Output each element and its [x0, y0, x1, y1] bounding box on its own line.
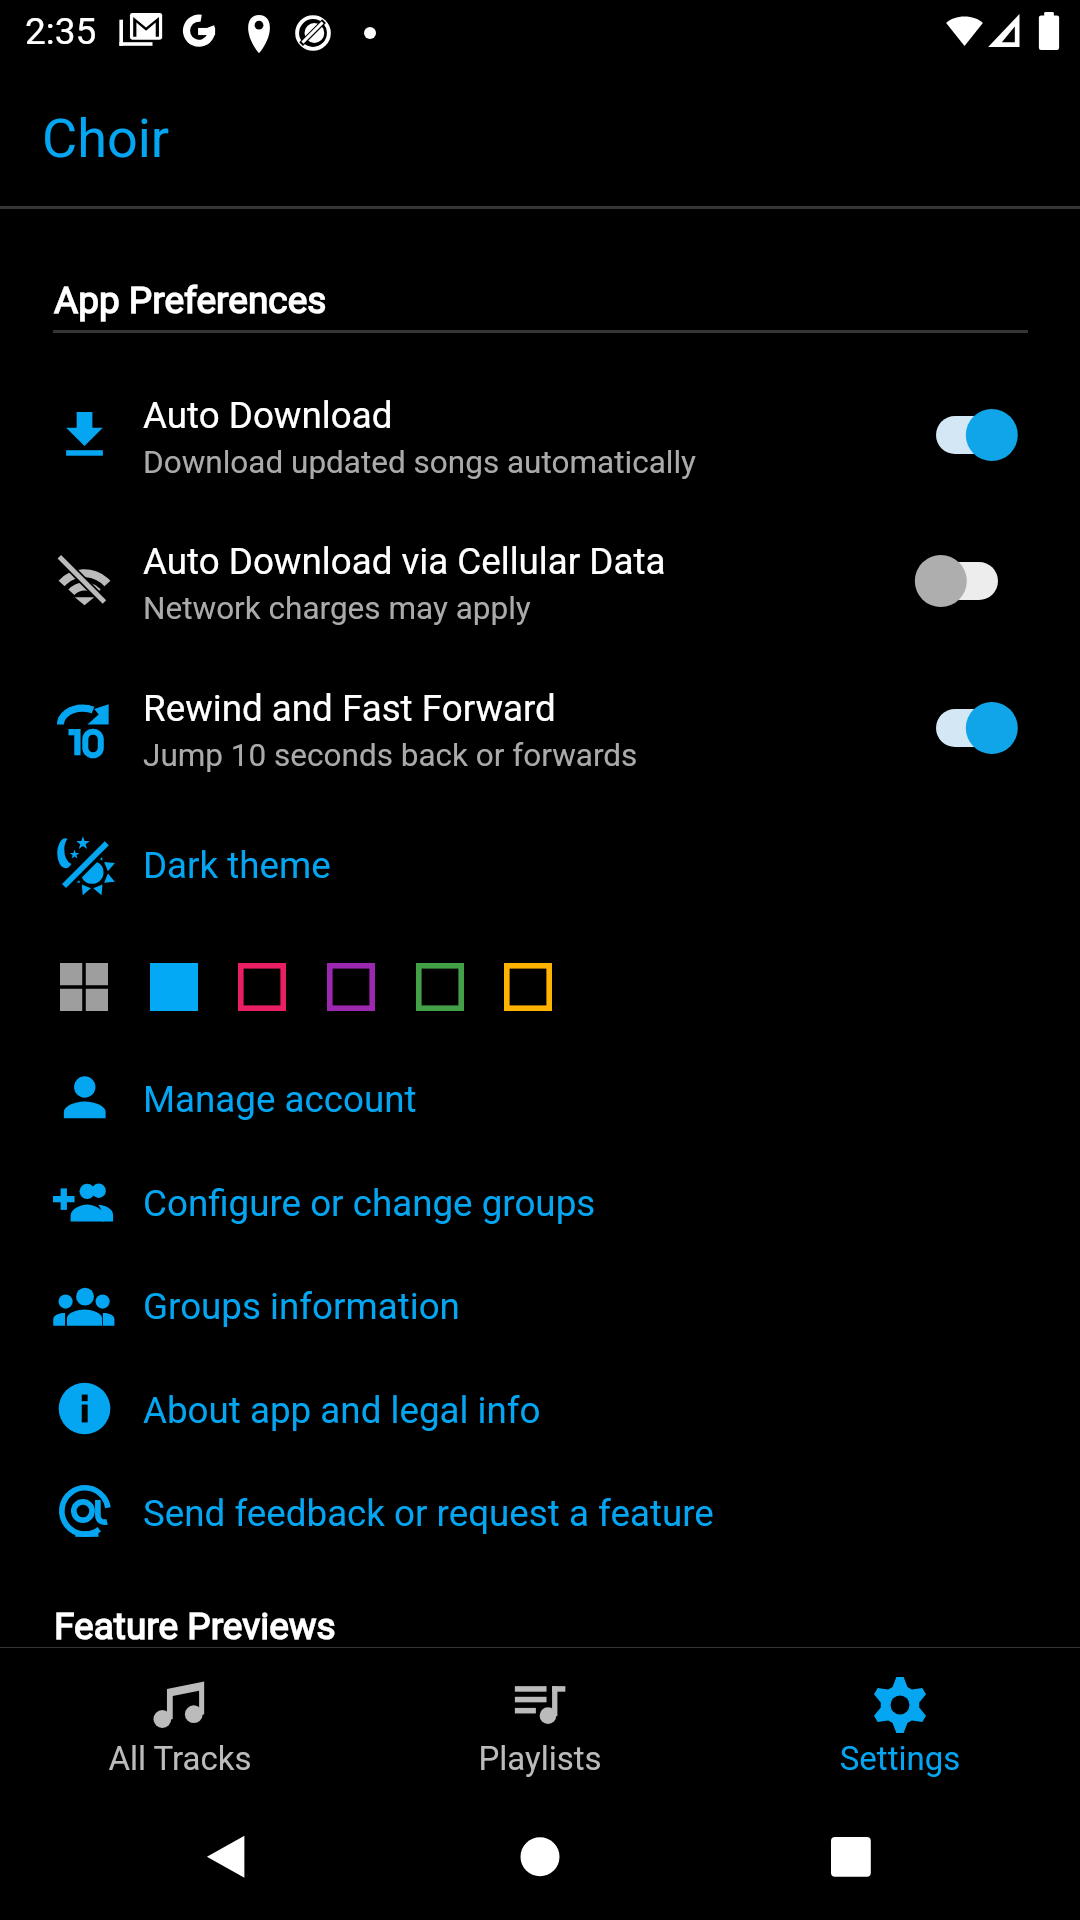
- button[interactable]: Theme colour: [238, 963, 286, 1011]
- staticText: Settings: [720, 1739, 1080, 1778]
- staticText: 2:35: [25, 10, 97, 53]
- button[interactable]: Theme colour: [327, 963, 375, 1011]
- button[interactable]: Rewind and Fast Forward: [900, 689, 1030, 767]
- button[interactable]: Auto Download via Cellular Data: [0, 511, 1080, 637]
- button[interactable]: Theme colour: [504, 963, 552, 1011]
- staticText: Manage account: [143, 1078, 417, 1121]
- staticText: Configure or change groups: [143, 1182, 596, 1225]
- button[interactable]: Back: [186, 1817, 266, 1897]
- button[interactable]: Groups information: [0, 1261, 1080, 1351]
- staticText: Groups information: [143, 1285, 460, 1328]
- staticText: Jump 10 seconds back or forwards: [143, 737, 638, 774]
- button[interactable]: All Tracks: [0, 1648, 360, 1800]
- button[interactable]: Configure or change groups: [0, 1158, 1080, 1248]
- button[interactable]: Manage account: [0, 1054, 1080, 1144]
- button[interactable]: Auto Download: [0, 365, 1080, 491]
- staticText: All Tracks: [0, 1739, 360, 1778]
- button[interactable]: Settings: [720, 1648, 1080, 1800]
- staticText: Dark theme: [143, 844, 331, 887]
- staticText: Send feedback or request a feature: [143, 1492, 714, 1535]
- button[interactable]: Auto Download via Cellular Data: [900, 542, 1030, 620]
- button[interactable]: About app and legal info: [0, 1365, 1080, 1455]
- staticText: Auto Download via Cellular Data: [143, 540, 666, 583]
- staticText: Feature Previews: [54, 1605, 336, 1648]
- button[interactable]: Dark theme: [0, 820, 1080, 910]
- button[interactable]: Rewind and Fast Forward: [0, 658, 1080, 784]
- staticText: App Preferences: [54, 279, 327, 322]
- staticText: Choir: [42, 107, 170, 170]
- button[interactable]: Playlists: [360, 1648, 720, 1800]
- button[interactable]: Theme colour: [416, 963, 464, 1011]
- staticText: Playlists: [360, 1739, 720, 1778]
- button[interactable]: System theme colour: [60, 963, 108, 1011]
- button[interactable]: Send feedback or request a feature: [0, 1468, 1080, 1558]
- staticText: About app and legal info: [143, 1389, 541, 1432]
- button[interactable]: Auto Download: [900, 396, 1030, 474]
- staticText: Rewind and Fast Forward: [143, 687, 556, 730]
- staticText: Network charges may apply: [143, 590, 531, 627]
- staticText: Download updated songs automatically: [143, 444, 696, 481]
- button[interactable]: Home: [500, 1817, 580, 1897]
- button[interactable]: Recent apps: [811, 1817, 891, 1897]
- staticText: Auto Download: [143, 394, 393, 437]
- button[interactable]: Choir: [0, 62, 1080, 205]
